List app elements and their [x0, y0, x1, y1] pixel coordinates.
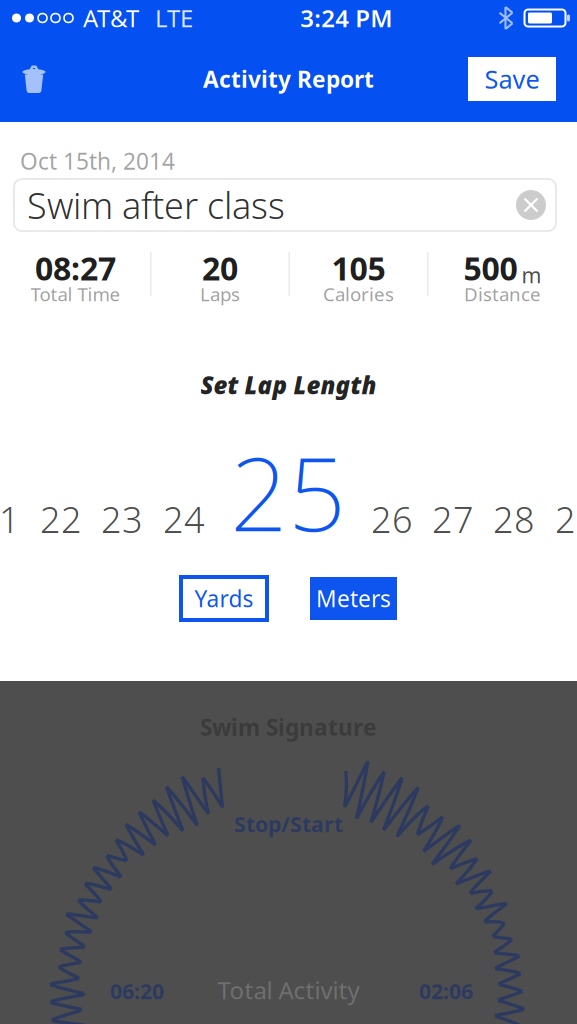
staticText: 26 [371, 495, 413, 543]
staticText: Oct 15th, 2014 [20, 146, 175, 176]
staticText: 29 [555, 495, 577, 543]
staticText: Activity Report [203, 64, 374, 94]
staticText: 06:20 [110, 977, 164, 1005]
staticText: Set Lap Length [200, 369, 376, 401]
button[interactable]: Clear text [509, 180, 553, 230]
staticText: Total Activity [217, 974, 359, 1006]
staticText: AT&T [83, 2, 139, 34]
staticText: Swim after class [27, 181, 285, 229]
staticText: Yards [194, 583, 253, 613]
staticText: 21 [0, 495, 20, 543]
staticText: Total Time [30, 282, 120, 306]
button[interactable]: Yards [181, 577, 267, 620]
staticText: 02:06 [419, 977, 473, 1005]
staticText: Stop/Start [234, 810, 343, 838]
staticText: 23 [101, 495, 143, 543]
staticText: m [521, 261, 541, 289]
button[interactable]: Save [468, 57, 556, 101]
staticText: 500 [463, 247, 517, 289]
staticText: 20 [202, 247, 238, 289]
staticText: Meters [316, 583, 391, 613]
button[interactable]: Meters [310, 577, 397, 620]
staticText: 08:27 [35, 247, 116, 289]
staticText: Laps [200, 282, 240, 306]
staticText: 24 [163, 495, 205, 543]
staticText: Calories [323, 282, 394, 306]
staticText: Distance [464, 282, 541, 306]
staticText: Swim Signature [200, 712, 377, 742]
staticText: LTE [155, 2, 193, 34]
button[interactable]: Delete [0, 46, 68, 112]
staticText: 22 [40, 495, 82, 543]
staticText: 27 [432, 495, 474, 543]
staticText: Save [484, 62, 539, 96]
staticText: 3:24 PM [300, 2, 392, 34]
staticText: 28 [493, 495, 535, 543]
staticText: 25 [230, 425, 346, 559]
staticText: 105 [331, 247, 385, 289]
